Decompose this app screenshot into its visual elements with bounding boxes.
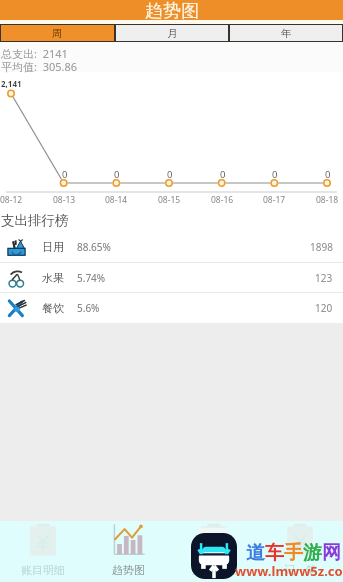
button[interactable]: 趋势图 [85,521,171,582]
staticText: 08-15 [158,194,181,206]
button[interactable]: 账目明细 [0,521,85,582]
staticText: 月 [167,27,178,40]
staticText: 0 [325,168,331,181]
staticText: 5.6% [77,301,100,315]
staticText: 支出排行榜 [1,212,69,229]
staticText: 餐饮 [42,301,64,315]
staticText: 预算管理 [192,563,236,577]
staticText: 123 [315,271,333,285]
staticText: 日用 [42,240,64,254]
staticText: 趋势图 [112,563,145,577]
staticText: 趋势图 [145,0,199,20]
staticText: 周 [52,27,63,40]
staticText: 手 [284,541,303,565]
staticText: 平均值: 305.86 [1,59,78,74]
staticText: 0 [167,168,173,181]
staticText: 0 [114,168,120,181]
staticText: 道 [246,541,265,565]
staticText: 游 [303,541,322,565]
staticText: 88.65% [77,240,111,254]
staticText: 1898 [310,240,333,254]
staticText: 0 [220,168,226,181]
staticText: 水果 [42,271,64,285]
staticText: 总支出: 2141 [1,46,68,61]
button[interactable]: 水果 [0,263,343,292]
staticText: 网 [322,541,341,565]
staticText: 08-18 [316,194,339,206]
staticText: 车 [265,541,284,565]
button[interactable]: 月 [116,25,228,41]
staticText: 08-17 [263,194,286,206]
staticText: 记一笔 [284,563,317,577]
staticText: 年 [281,27,292,40]
staticText: 08-14 [105,194,128,206]
button[interactable]: 日用 [0,232,343,262]
staticText: 08-16 [211,194,234,206]
staticText: 0 [62,168,68,181]
staticText: 120 [315,301,333,315]
staticText: 2,141 [1,78,22,89]
staticText: 5.74% [77,271,106,285]
button[interactable]: 预算管理 [171,521,257,582]
button[interactable]: 餐饮 [0,293,343,323]
button[interactable]: 记一笔 [257,521,343,582]
staticText: 08-13 [53,194,76,206]
staticText: www.lmww5z.com [235,562,343,580]
staticText: 账目明细 [21,563,65,577]
button[interactable]: 周 [1,25,114,41]
staticText: 0 [272,168,278,181]
staticText: 08-12 [0,194,23,206]
button[interactable]: 年 [230,25,342,41]
